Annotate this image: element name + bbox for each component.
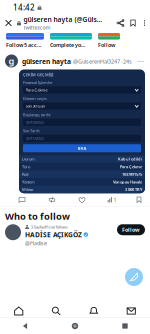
staticText: gülseren hayta (@Güls… — [23, 15, 102, 24]
staticText: Kod — [22, 172, 28, 177]
button[interactable]: ARA — [23, 144, 141, 152]
button[interactable]: Follow 5 acc… — [6, 33, 44, 48]
staticText: twitter.com — [23, 24, 50, 31]
staticText: Para Çekme — [120, 164, 142, 169]
button[interactable]: Recents — [100, 318, 150, 334]
staticText: Para Çekme — [25, 87, 47, 93]
staticText: @GulserenHal3247 · 24s — [73, 58, 132, 65]
staticText: Son 30 Gün — [25, 103, 44, 109]
staticText: Who to follow — [5, 210, 70, 222]
button[interactable]: Compose new post — [125, 268, 143, 286]
button[interactable]: More — [137, 58, 145, 65]
staticText: 05/11/2023 — [25, 136, 43, 141]
button[interactable]: Notifications — [75, 304, 112, 317]
button[interactable]: More options — [139, 15, 150, 31]
button[interactable]: Back — [0, 318, 50, 334]
staticText: 1037891575 — [122, 172, 142, 177]
staticText: @Hadise — [25, 240, 47, 247]
staticText: 3 000 TRY — [125, 187, 142, 192]
button[interactable]: Home — [50, 318, 100, 334]
button[interactable]: Bookmark — [127, 15, 139, 31]
staticText: Dönem seçin: — [23, 96, 47, 101]
staticText: 1 — [113, 196, 116, 203]
button[interactable]: Like — [70, 194, 94, 205]
staticText: Yöntem — [22, 179, 35, 184]
button[interactable]: Reply — [10, 194, 34, 205]
staticText: gülseren hayta — [22, 57, 71, 66]
button[interactable]: Follow — [117, 224, 145, 235]
button[interactable]: Follow — [98, 33, 120, 48]
staticText: Follow — [98, 41, 115, 48]
staticText: Başlangıç tarihi: — [23, 112, 51, 117]
button[interactable]: Share — [114, 15, 127, 31]
staticText: g — [8, 55, 14, 67]
button[interactable]: Search — [37, 304, 75, 317]
button[interactable]: Views — [100, 194, 124, 205]
button[interactable]: Bookmark — [130, 194, 148, 205]
staticText: 3.Sayfaofficial follows — [31, 224, 68, 229]
staticText: Follow — [122, 226, 140, 233]
staticText: Durum — [22, 156, 35, 162]
staticText: Vonopay Havale — [113, 179, 142, 184]
staticText: ARA — [77, 146, 86, 151]
staticText: Finansal İşlemler — [23, 80, 53, 85]
staticText: 05/10/2023 — [25, 119, 43, 125]
staticText: HADİSE AÇIKGÖZ — [25, 230, 82, 239]
button[interactable]: Complete yo… — [50, 33, 92, 48]
staticText: Kabul edildi — [118, 156, 142, 162]
button[interactable]: Messages — [112, 304, 150, 317]
staticText: Complete yo… — [50, 41, 85, 48]
staticText: Miktar — [22, 187, 34, 192]
button[interactable]: Close — [0, 15, 17, 31]
button[interactable]: Home — [0, 304, 37, 317]
button[interactable]: Repost — [40, 194, 64, 205]
staticText: 14:42 — [13, 2, 35, 13]
staticText: Son Tarih: — [23, 128, 40, 133]
staticText: ÇEKİM GEÇMİŞİ — [23, 72, 53, 77]
staticText: Türü — [22, 164, 30, 169]
staticText: Follow 5 acc… — [6, 41, 41, 48]
